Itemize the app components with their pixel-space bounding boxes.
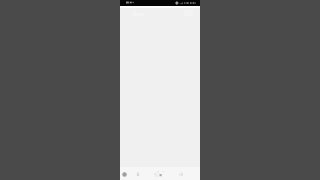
button[interactable]: More: [173, 167, 189, 180]
button[interactable]: Cart: [151, 167, 167, 180]
button[interactable]: Account: [130, 167, 146, 180]
button[interactable]: Home: [116, 167, 132, 180]
